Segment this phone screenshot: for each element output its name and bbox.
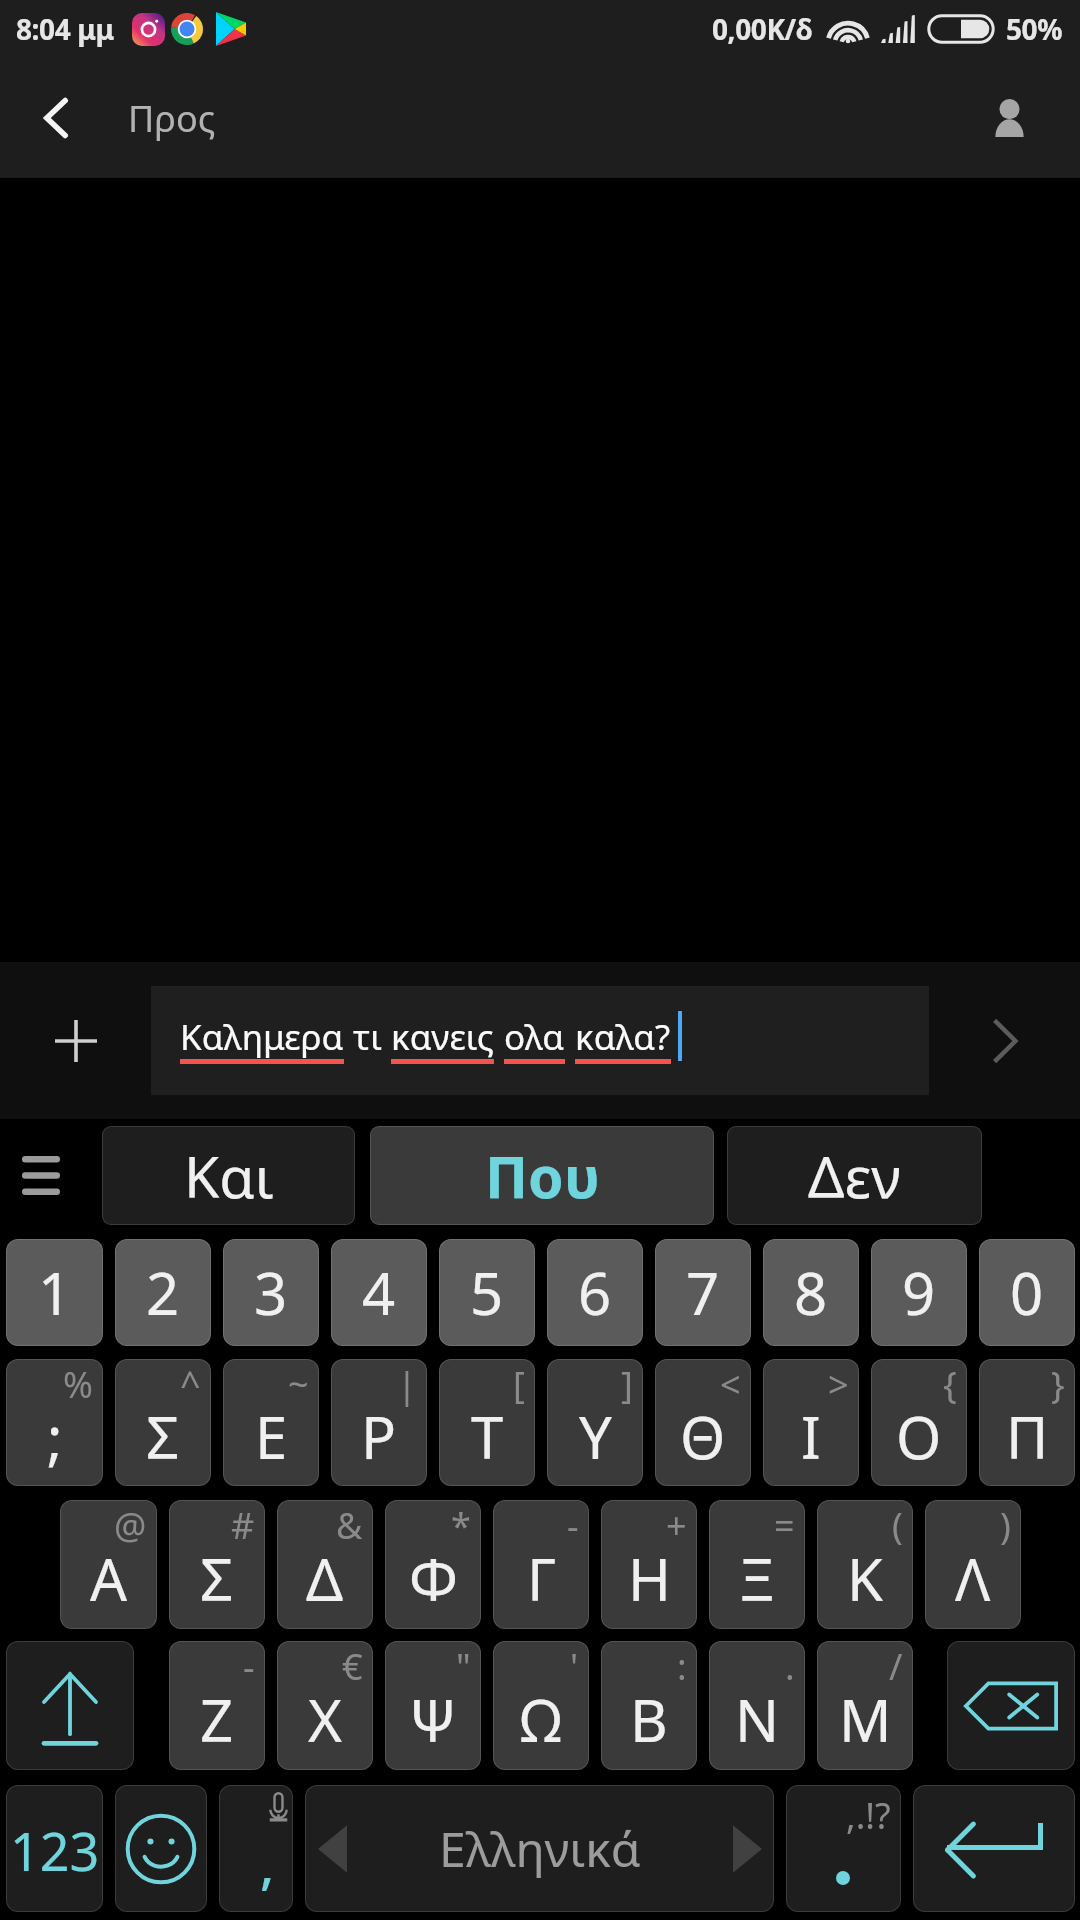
button[interactable]: - [493,1500,589,1629]
button[interactable]: + [601,1500,697,1629]
staticText: ] [621,1360,633,1409]
button[interactable]: Comma and voice input [219,1785,293,1912]
staticText: 7 [686,1253,720,1332]
staticText: ~ [288,1360,309,1409]
button[interactable]: Space [305,1785,774,1912]
staticText: , [260,1828,275,1899]
button[interactable]: # [169,1500,265,1629]
button[interactable]: " [385,1641,481,1770]
button[interactable]: / [817,1641,913,1770]
staticText: Ν [735,1680,780,1759]
staticText: Μ [839,1680,892,1759]
staticText: € [342,1642,363,1691]
staticText: Ψ [409,1680,457,1759]
staticText: 2 [146,1253,180,1332]
button[interactable]: ^ [115,1359,211,1486]
staticText: Ρ [361,1397,397,1476]
button[interactable]: < [655,1359,751,1486]
button[interactable]: ( [817,1500,913,1629]
staticText: 8:04 μμ [16,10,115,48]
staticText: Π [1006,1397,1049,1476]
button[interactable]: 0 [979,1239,1075,1346]
staticText: 8 [794,1253,828,1332]
button[interactable]: Καλημερα [151,986,929,1095]
button[interactable]: Send [929,962,1080,1119]
button[interactable]: & [277,1500,373,1629]
button[interactable]: € [277,1641,373,1770]
button[interactable]: Add attachment [0,962,151,1119]
button[interactable]: Δεν [727,1126,982,1225]
button[interactable]: Keyboard menu [0,1126,102,1225]
staticText: : [677,1642,687,1691]
button[interactable]: Contact [938,58,1080,178]
button[interactable]: Backspace [947,1641,1075,1770]
button[interactable]: * [385,1500,481,1629]
staticText: Καλημερα [180,1013,344,1061]
staticText: + [666,1501,687,1550]
button[interactable]: Back [0,58,112,178]
button[interactable]: Period [786,1785,901,1912]
staticText: % [63,1360,93,1409]
button[interactable]: Shift [6,1641,134,1770]
button[interactable]: ] [547,1359,643,1486]
staticText: κανεις [391,1013,494,1061]
button[interactable]: 2 [115,1239,211,1346]
staticText: Θ [680,1397,726,1476]
staticText: ολα [504,1013,565,1061]
staticText: 9 [902,1253,936,1332]
button[interactable]: . [709,1641,805,1770]
button[interactable]: ) [925,1500,1021,1629]
staticText: Η [628,1539,671,1618]
button[interactable]: [ [439,1359,535,1486]
staticText: & [336,1501,363,1550]
button[interactable]: ' [493,1641,589,1770]
staticText: Υ [579,1397,612,1476]
button[interactable]: 8 [763,1239,859,1346]
staticText: ) [1000,1501,1011,1550]
staticText: - [243,1642,255,1691]
button[interactable]: 3 [223,1239,319,1346]
staticText: 123 [10,1815,100,1886]
button[interactable]: Που [370,1126,714,1225]
button[interactable]: - [169,1641,265,1770]
staticText: = [774,1501,795,1550]
staticText: Που [485,1137,600,1215]
button[interactable]: } [979,1359,1075,1486]
staticText: Ε [255,1397,288,1476]
staticText: . [785,1642,795,1691]
staticText: καλα? [575,1013,671,1061]
button[interactable]: Και [102,1126,355,1225]
staticText: Προς [128,94,216,143]
button[interactable]: Emoji [115,1785,207,1912]
button[interactable]: 1 [6,1239,103,1346]
staticText: Σ [146,1397,180,1476]
staticText: 4 [362,1253,396,1332]
staticText: - [567,1501,579,1550]
staticText: | [397,1360,417,1409]
button[interactable]: 123 [6,1785,103,1912]
staticText: Κ [847,1539,883,1618]
staticText: 0,00K/δ [712,10,813,48]
button[interactable]: = [709,1500,805,1629]
staticText: Ο [896,1397,942,1476]
button[interactable]: | [331,1359,427,1486]
staticText: * [451,1501,471,1550]
button[interactable]: > [763,1359,859,1486]
button[interactable]: : [601,1641,697,1770]
button[interactable]: { [871,1359,967,1486]
button[interactable]: % [6,1359,103,1486]
staticText: ; [47,1397,63,1476]
button[interactable]: 9 [871,1239,967,1346]
staticText: Ελληνικά [439,1816,641,1881]
button[interactable]: 5 [439,1239,535,1346]
button[interactable]: ~ [223,1359,319,1486]
button[interactable]: 7 [655,1239,751,1346]
button[interactable]: Enter [913,1785,1075,1912]
button[interactable]: 4 [331,1239,427,1346]
staticText: < [720,1360,741,1409]
staticText: # [231,1501,255,1550]
button[interactable]: @ [60,1500,157,1629]
button[interactable]: 6 [547,1239,643,1346]
staticText: @ [114,1501,147,1550]
